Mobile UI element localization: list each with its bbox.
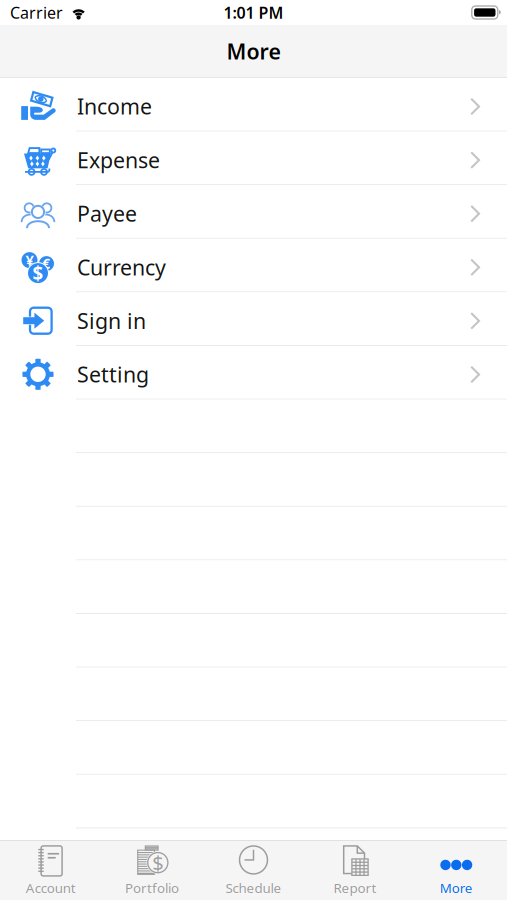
staticText: Schedule xyxy=(225,879,281,897)
staticText: $ xyxy=(152,849,163,876)
button[interactable]: Income xyxy=(0,78,507,132)
staticText: Payee xyxy=(77,199,137,228)
button[interactable]: ¥ xyxy=(0,239,507,292)
staticText: Income xyxy=(77,92,152,120)
button[interactable]: Expense xyxy=(0,132,507,185)
button[interactable]: More xyxy=(406,841,507,900)
staticText: More xyxy=(226,37,280,65)
staticText: € xyxy=(42,255,50,272)
button[interactable]: Setting xyxy=(0,346,507,400)
staticText: Sign in xyxy=(77,306,146,335)
button[interactable]: Report xyxy=(304,841,406,900)
staticText: 1:01 PM xyxy=(223,2,283,23)
button[interactable]: Account xyxy=(0,841,101,900)
button[interactable]: Schedule xyxy=(203,841,304,900)
button[interactable]: $ xyxy=(101,841,203,900)
staticText: Setting xyxy=(77,360,149,388)
staticText: More xyxy=(440,879,473,897)
staticText: Currency xyxy=(77,253,166,281)
staticText: Expense xyxy=(77,146,160,174)
staticText: Report xyxy=(333,879,376,897)
staticText: Account xyxy=(26,879,76,897)
staticText: ¥ xyxy=(25,250,33,270)
staticText: Portfolio xyxy=(125,879,179,897)
button[interactable]: Sign in xyxy=(0,292,507,346)
button[interactable]: Payee xyxy=(0,185,507,239)
staticText: Carrier xyxy=(10,2,63,23)
staticText: $ xyxy=(32,261,43,285)
